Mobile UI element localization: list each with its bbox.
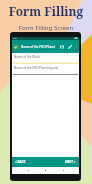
staticText: ▴▮▮ — [74, 37, 78, 40]
button[interactable]: < BACK — [12, 158, 29, 166]
staticText: Form Filling — [0, 3, 92, 19]
staticText: < BACK — [15, 160, 26, 164]
button[interactable]: Home — [44, 169, 47, 172]
button[interactable]: Edit — [68, 45, 72, 49]
staticText: Name of the PHC/Planning unit — [14, 66, 59, 70]
staticText: NEXT > — [65, 160, 76, 164]
button[interactable]: Name of the Block — [12, 55, 79, 59]
button[interactable]: Save — [60, 45, 64, 49]
button[interactable]: Recents — [62, 169, 65, 172]
staticText: Name of the Block — [14, 55, 40, 59]
staticText: Name of the PHC/Planni — [21, 45, 56, 49]
button[interactable]: App logo — [13, 44, 19, 50]
staticText: Form Filling Screen — [0, 23, 92, 31]
button[interactable]: NEXT > — [62, 158, 79, 166]
button[interactable]: Back — [27, 169, 30, 172]
button[interactable]: More options — [75, 45, 78, 48]
button[interactable]: Name of the PHC/Planning unit — [12, 66, 79, 70]
staticText: 9:41 — [13, 37, 18, 40]
